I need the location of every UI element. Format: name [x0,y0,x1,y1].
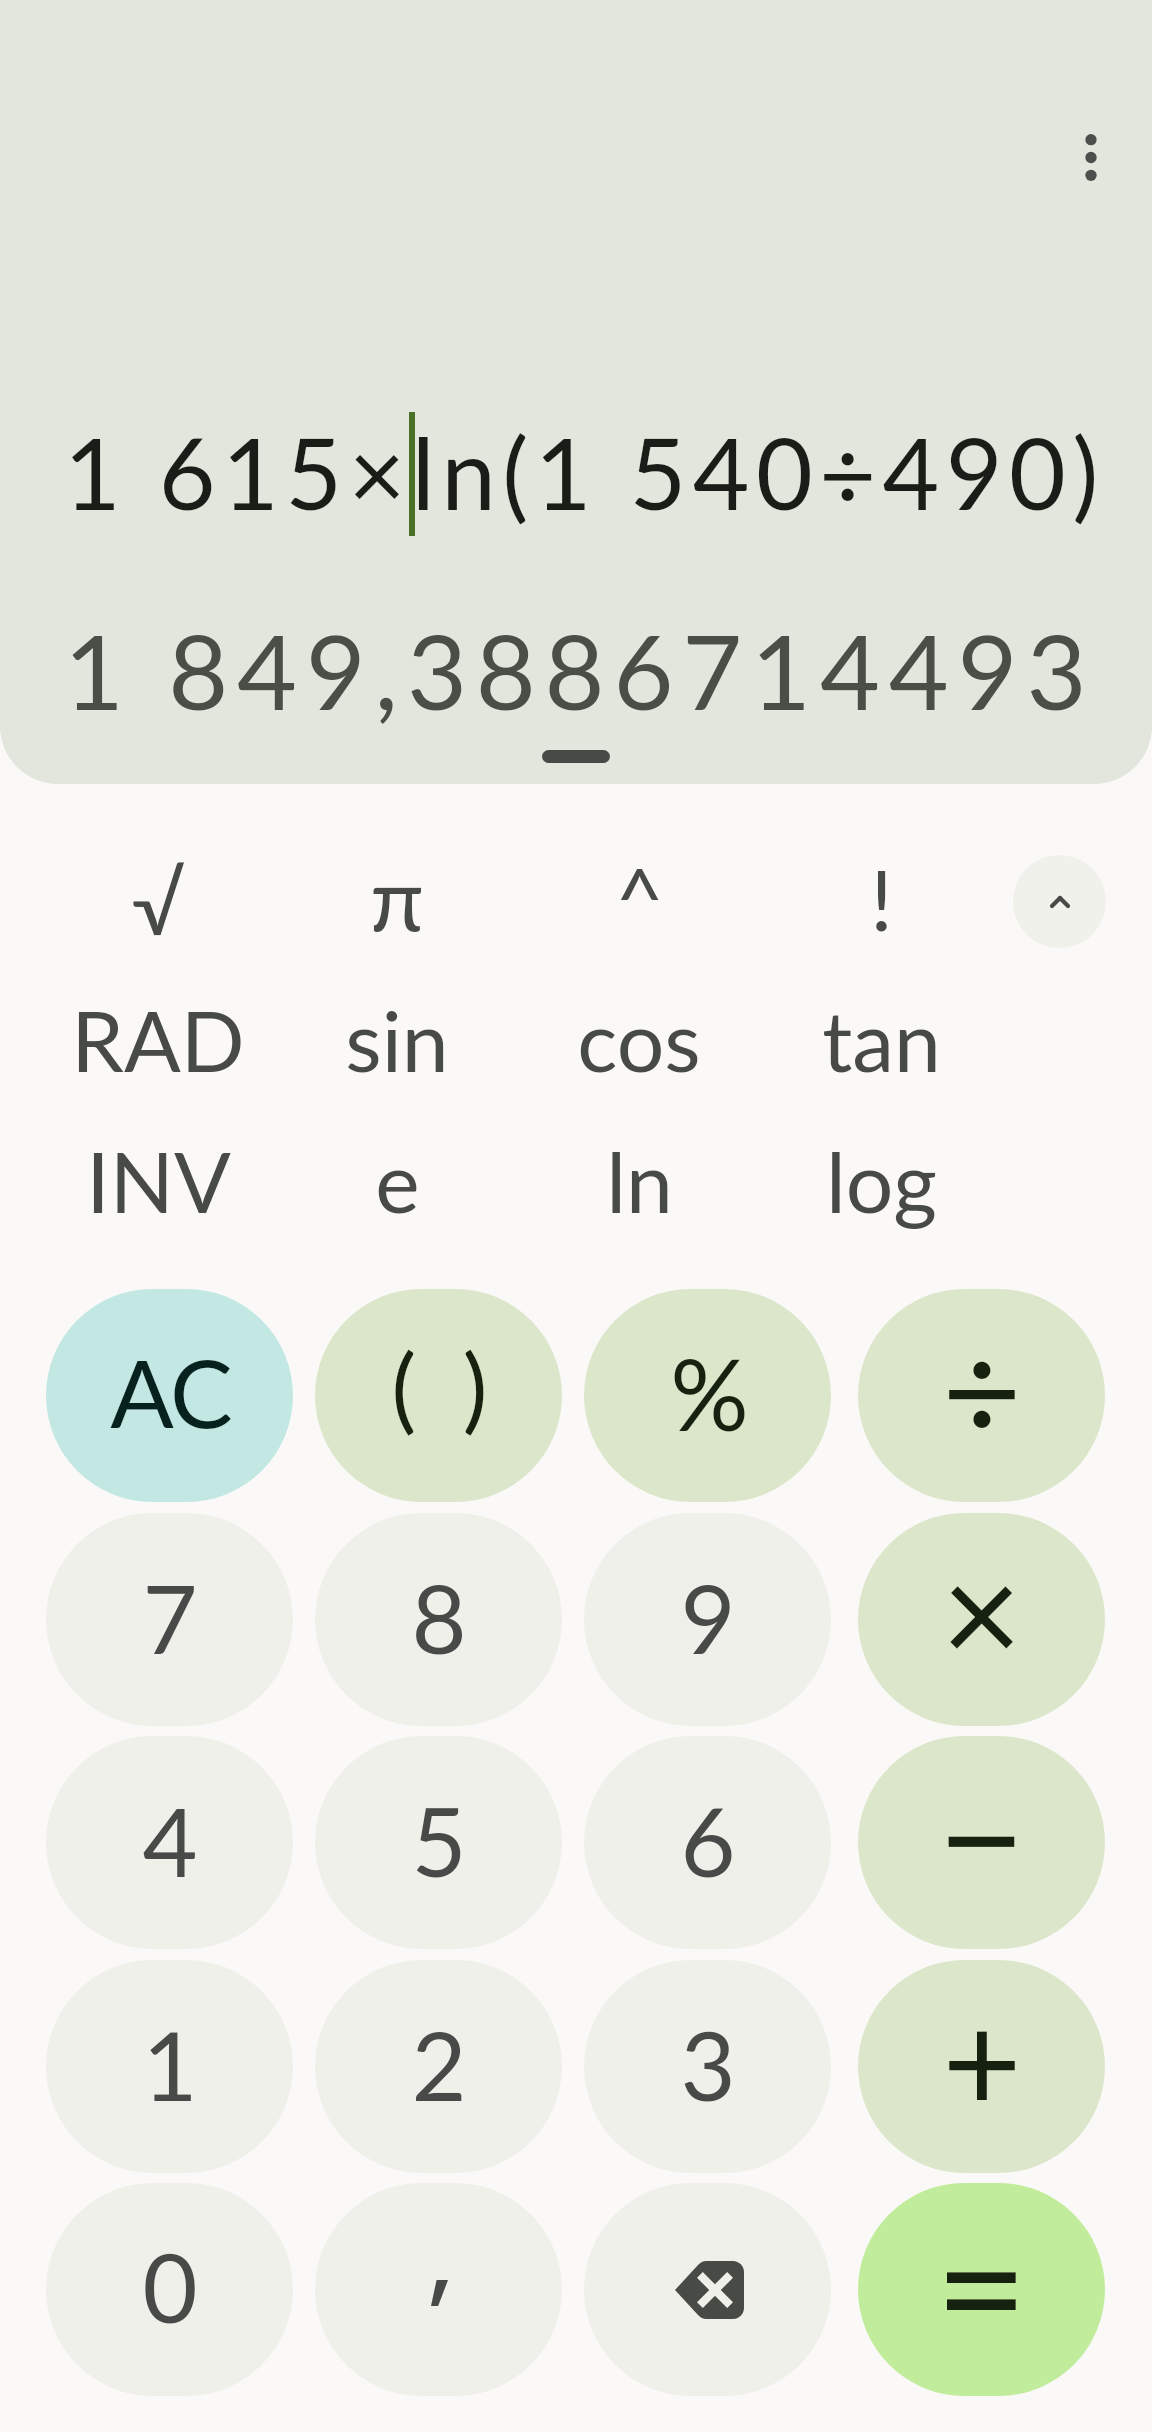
button[interactable]: sin [297,969,497,1109]
staticText: 1 615×ln(1 540÷490) [64,413,1105,531]
staticText: 1 849,3886714493 [64,608,1096,732]
button[interactable]: √ [58,832,258,972]
staticText: 0 [142,2229,198,2343]
staticText: 5 [411,1783,467,1897]
button[interactable]: cos [539,969,739,1109]
button[interactable]: One [46,1960,293,2173]
staticText: 4 [142,1783,198,1897]
button[interactable]: Equals [858,2183,1105,2396]
button[interactable]: Subtract [858,1736,1105,1949]
staticText: INV [86,1130,231,1231]
button[interactable]: Percent [584,1289,831,1502]
staticText: 8 [411,1560,467,1674]
staticText: ln [606,1130,673,1231]
button[interactable]: π [297,827,497,967]
button[interactable]: Add [858,1960,1105,2173]
button[interactable]: log [781,1110,981,1250]
button[interactable]: ^ [539,826,739,966]
staticText: ! [870,848,893,949]
button[interactable]: ! [781,828,981,968]
button[interactable]: tan [781,969,981,1109]
button[interactable]: Three [584,1960,831,2173]
button[interactable]: Backspace [584,2183,831,2396]
button[interactable]: More options [1046,113,1135,202]
button[interactable]: RAD [58,969,258,1109]
staticText: 1 [142,2007,198,2121]
staticText: AC [110,1335,231,1448]
staticText: 6 [680,1783,736,1897]
button[interactable]: Parentheses [315,1289,562,1502]
button[interactable]: e [297,1110,497,1250]
button[interactable]: Four [46,1736,293,1949]
staticText: ( ) [391,1329,499,1442]
button[interactable]: Collapse scientific keypad [1013,855,1106,948]
button[interactable]: Zero [46,2183,293,2396]
button[interactable]: Multiply [858,1513,1105,1726]
staticText: log [826,1130,937,1231]
button[interactable]: Decimal separator [315,2183,562,2396]
staticText: − [937,1742,1026,1926]
button[interactable]: Eight [315,1513,562,1726]
button[interactable]: ln [539,1110,739,1250]
button[interactable]: Six [584,1736,831,1949]
staticText: √ [131,851,185,953]
staticText: π [370,845,424,949]
staticText: sin [345,989,449,1090]
staticText: cos [577,989,701,1090]
staticText: + [942,1977,1022,2141]
button[interactable]: Five [315,1736,562,1949]
staticText: RAD [71,989,245,1090]
button[interactable]: All clear [46,1289,293,1502]
staticText: 3 [680,2007,736,2121]
button[interactable]: INV [58,1110,258,1250]
staticText: ^ [615,846,664,947]
button[interactable]: Two [315,1960,562,2173]
staticText: 7 [142,1560,198,1674]
staticText: ÷ [942,1306,1022,1470]
staticText: e [375,1130,420,1231]
staticText: 9 [680,1560,736,1674]
staticText: % [670,1334,749,1452]
button[interactable]: Nine [584,1513,831,1726]
staticText: 2 [411,2007,467,2121]
staticText: × [941,1527,1022,1694]
button[interactable]: Seven [46,1513,293,1726]
button[interactable]: Divide [858,1289,1105,1502]
staticText: tan [822,989,941,1090]
staticText: = [935,2187,1028,2379]
